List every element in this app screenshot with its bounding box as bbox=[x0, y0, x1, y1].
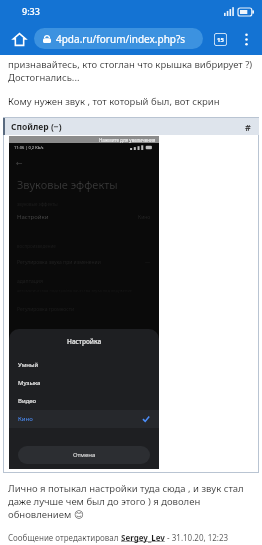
staticText: Сообщение отредактировал bbox=[8, 532, 121, 543]
staticText: адаптация bbox=[17, 278, 43, 285]
staticText: звуковые эффекты bbox=[17, 201, 58, 207]
staticText: Умный bbox=[18, 361, 39, 369]
staticText: 4pda.ru/forum/index.php?s bbox=[56, 32, 186, 46]
staticText: Нажмите для увеличения bbox=[99, 137, 156, 143]
staticText: Настройки bbox=[17, 213, 49, 221]
staticText: Видео bbox=[18, 397, 37, 405]
staticText: воспроизведение bbox=[17, 243, 56, 249]
button[interactable]: Регулировка звука при изменении bbox=[17, 259, 151, 266]
button[interactable]: Нажмите для увеличения bbox=[9, 136, 159, 469]
staticText: 15 bbox=[217, 36, 224, 44]
button[interactable]: Sergey_Lev bbox=[121, 532, 165, 543]
staticText: Кино bbox=[18, 415, 33, 423]
button[interactable]: Кино bbox=[18, 410, 150, 428]
staticText: Звуковые эффекты bbox=[17, 177, 118, 192]
button[interactable]: Умный bbox=[18, 356, 150, 374]
staticText: Регулировка звука при изменении bbox=[17, 259, 101, 266]
button[interactable]: 4pda.ru/forum/index.php?s bbox=[34, 28, 203, 49]
staticText: признавайтесь, кто стоглан что крышка ви… bbox=[8, 58, 254, 84]
staticText: Кому нужен звук , тот который был, вот с… bbox=[8, 95, 220, 108]
staticText: ← bbox=[16, 159, 23, 168]
button[interactable]: Видео bbox=[18, 392, 150, 410]
button[interactable]: Tabs bbox=[207, 26, 233, 52]
button[interactable]: Отмена bbox=[18, 446, 150, 464]
button[interactable]: More options bbox=[233, 26, 259, 52]
staticText: Настройка bbox=[67, 337, 102, 346]
staticText: Отмена bbox=[73, 451, 96, 459]
button[interactable]: Музыка bbox=[18, 374, 150, 392]
staticText: # bbox=[245, 121, 251, 133]
button[interactable]: Настройки bbox=[17, 213, 151, 221]
staticText: 9:33 bbox=[22, 5, 40, 17]
staticText: Кино bbox=[138, 214, 151, 221]
staticText: 11:06 | 0,2 Kb/s bbox=[14, 145, 44, 150]
staticText: Музыка bbox=[18, 379, 41, 387]
staticText: Спойлер (−) bbox=[11, 121, 62, 133]
staticText: - 31.10.20, 12:23 bbox=[165, 532, 229, 543]
staticText: Лично я потыкал настройки туда сюда , и … bbox=[8, 482, 254, 521]
button[interactable]: Home bbox=[7, 27, 31, 51]
staticText: Регулировка громкости bbox=[17, 306, 75, 313]
button[interactable]: Спойлер (−) bbox=[3, 118, 259, 135]
